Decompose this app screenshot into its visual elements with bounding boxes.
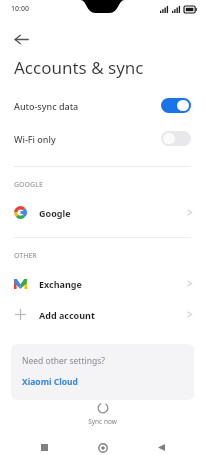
staticText: Sync now [88,417,117,426]
staticText: Wi-Fi only [14,133,161,145]
staticText: Accounts & sync [14,56,144,79]
staticText: Auto-sync data [14,100,161,112]
button[interactable]: Need other settings? [11,344,194,400]
staticText: OTHER [14,251,37,261]
button[interactable]: Recents [29,440,59,455]
staticText: Exchange [39,278,186,290]
button[interactable]: Google [0,197,205,228]
button[interactable]: Back [6,24,36,54]
button[interactable]: Wi-Fi only [0,122,205,155]
button[interactable]: Sync now [0,400,205,428]
staticText: 10:00 [11,4,29,14]
button[interactable]: Exchange [0,268,205,299]
staticText: Need other settings? [22,355,105,367]
button[interactable]: Add account [0,299,205,330]
staticText: GOOGLE [14,180,43,190]
button[interactable]: Home [88,440,118,455]
staticText: Add account [39,309,186,321]
staticText: Xiaomi Cloud [22,376,78,388]
button[interactable]: Auto-sync data [0,89,205,122]
staticText: Google [39,207,186,219]
button[interactable]: Back [146,440,176,455]
